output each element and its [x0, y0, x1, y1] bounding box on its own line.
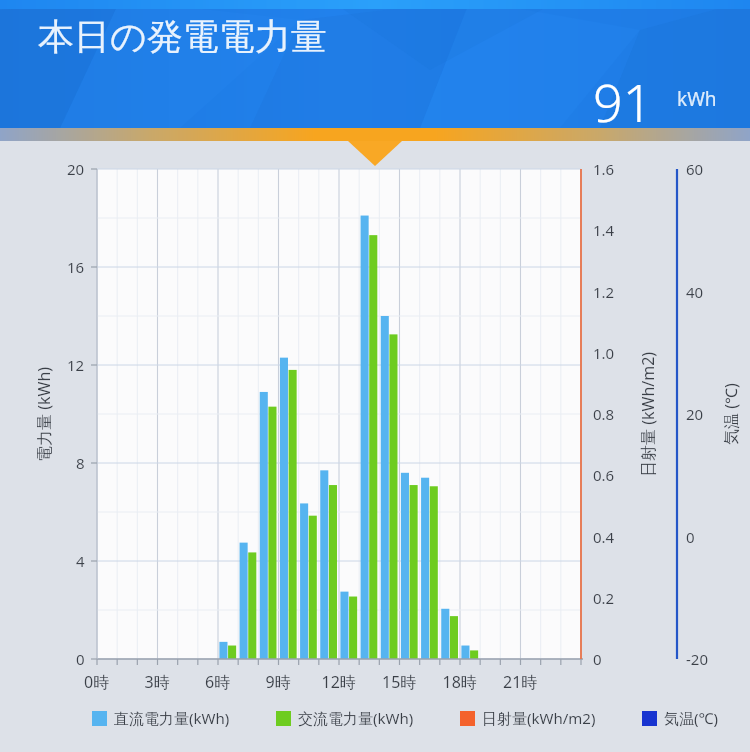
button[interactable] — [0, 0, 750, 141]
